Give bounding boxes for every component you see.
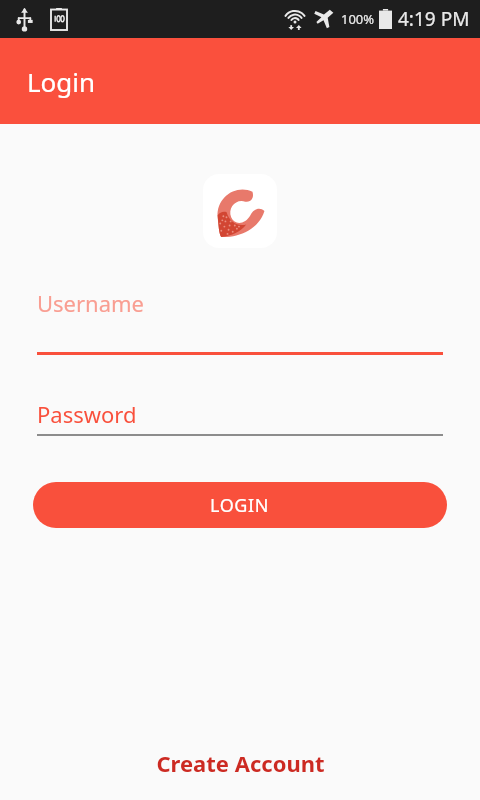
button[interactable]: LOGIN bbox=[33, 482, 447, 528]
button[interactable]: Create Account bbox=[0, 726, 480, 800]
staticText: Password bbox=[37, 399, 137, 429]
staticText: Username bbox=[37, 288, 145, 318]
staticText: 100% bbox=[341, 10, 375, 28]
staticText: Create Account bbox=[156, 748, 325, 778]
button[interactable]: Password bbox=[0, 399, 480, 436]
button[interactable]: Username bbox=[0, 288, 480, 355]
staticText: Login bbox=[27, 64, 96, 99]
staticText: 4:19 PM bbox=[398, 6, 470, 32]
staticText: LOGIN bbox=[210, 493, 270, 518]
